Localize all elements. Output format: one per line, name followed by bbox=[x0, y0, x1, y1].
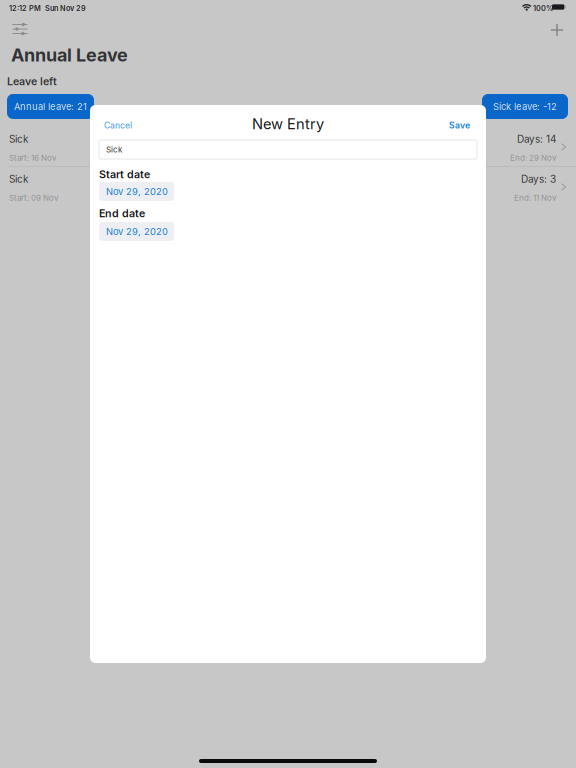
button[interactable]: Nov 29, 2020 bbox=[99, 222, 174, 241]
staticText: Leave left bbox=[7, 75, 57, 88]
staticText: Nov 29, 2020 bbox=[106, 186, 168, 197]
staticText: End: 29 Nov bbox=[510, 153, 556, 163]
staticText: Start: 16 Nov bbox=[9, 153, 56, 163]
staticText: Sun Nov 29 bbox=[45, 4, 86, 13]
staticText: Sick bbox=[106, 145, 122, 154]
staticText: Days: 14 bbox=[517, 133, 556, 145]
staticText: New Entry bbox=[252, 115, 324, 133]
button[interactable]: Cancel bbox=[101, 117, 135, 133]
staticText: 100% bbox=[533, 4, 553, 13]
staticText: Cancel bbox=[104, 120, 132, 130]
staticText: 12:12 PM bbox=[9, 4, 41, 13]
button[interactable]: Save bbox=[446, 117, 473, 133]
staticText: Sick bbox=[9, 173, 28, 185]
button[interactable]: Filter bbox=[7, 18, 33, 40]
button[interactable]: Annual leave: 21 bbox=[7, 94, 94, 119]
staticText: Annual leave: 21 bbox=[14, 101, 87, 112]
staticText: Start: 09 Nov bbox=[9, 193, 58, 203]
staticText: Annual Leave bbox=[11, 44, 128, 66]
button[interactable]: Sick bbox=[0, 167, 576, 206]
staticText: Save bbox=[449, 120, 470, 130]
staticText: Sick bbox=[9, 133, 28, 145]
staticText: Nov 29, 2020 bbox=[106, 226, 168, 237]
button[interactable]: Nov 29, 2020 bbox=[99, 182, 174, 201]
staticText: Days: 3 bbox=[521, 173, 556, 185]
staticText: Sick leave: -12 bbox=[493, 101, 557, 112]
button[interactable]: Sick leave: -12 bbox=[482, 94, 568, 119]
staticText: Start date bbox=[99, 168, 150, 181]
button[interactable]: Add entry bbox=[544, 19, 570, 41]
staticText: End: 11 Nov bbox=[514, 193, 556, 203]
button[interactable]: Sick bbox=[0, 127, 576, 166]
staticText: End date bbox=[99, 207, 145, 220]
